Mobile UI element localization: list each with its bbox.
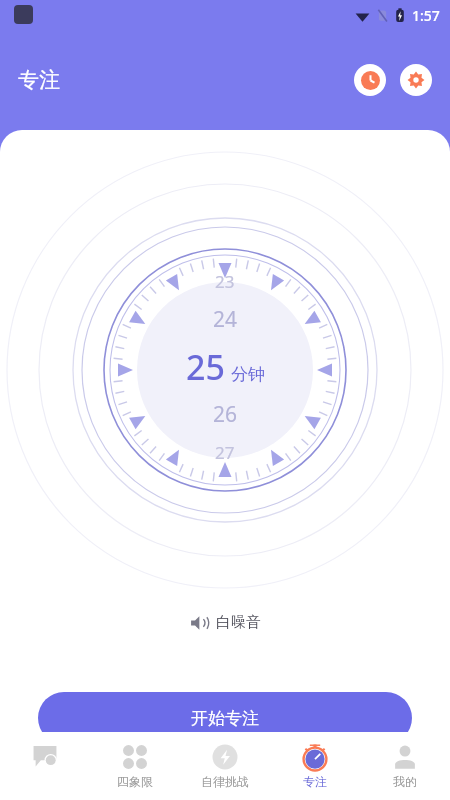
staticText: 1:57 [412, 6, 440, 25]
staticText: 分钟 [231, 364, 265, 385]
staticText: 24 [213, 305, 238, 334]
button[interactable]: 开始专注 [38, 692, 412, 744]
button[interactable]: Notes [0, 732, 90, 800]
button[interactable]: 四象限 [90, 732, 180, 800]
button[interactable]: 我的 [360, 732, 450, 800]
staticText: 26 [213, 400, 238, 429]
button[interactable]: History [354, 64, 386, 96]
staticText: 我的 [393, 774, 417, 789]
staticText: 25 [186, 344, 225, 390]
staticText: 专注 [303, 774, 327, 789]
staticText: 白噪音 [216, 613, 261, 632]
button[interactable]: 自律挑战 [180, 732, 270, 800]
button[interactable]: 白噪音 [172, 605, 279, 640]
staticText: 自律挑战 [201, 774, 249, 789]
button[interactable]: Settings [400, 64, 432, 96]
staticText: 23 [215, 270, 235, 293]
staticText: 专注 [18, 67, 60, 93]
staticText: 27 [215, 441, 235, 464]
staticText: 开始专注 [191, 708, 259, 729]
staticText: 四象限 [117, 774, 153, 789]
button[interactable]: 专注 [270, 732, 360, 800]
